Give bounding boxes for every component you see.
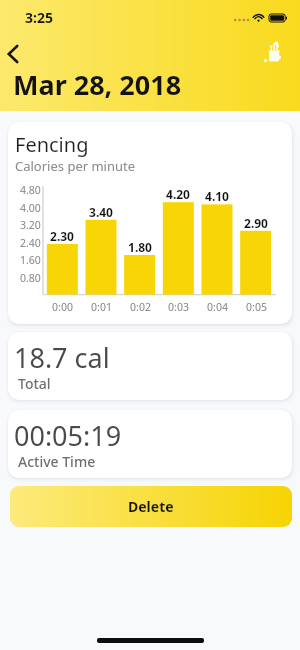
staticText: Delete <box>128 497 174 516</box>
staticText: Mar 28, 2018 <box>13 66 182 103</box>
staticText: 1.60 <box>20 253 41 267</box>
staticText: 1.80 <box>128 239 152 255</box>
button[interactable]: Workout type <box>262 38 290 72</box>
staticText: 0:04 <box>207 300 228 314</box>
staticText: Total <box>18 374 51 393</box>
staticText: 3:25 <box>25 8 53 27</box>
staticText: 2.40 <box>20 236 41 250</box>
staticText: Fencing <box>15 131 89 158</box>
staticText: Active Time <box>18 452 96 471</box>
staticText: 0:03 <box>168 300 189 314</box>
staticText: 2.90 <box>244 215 268 231</box>
button[interactable]: 00:05:19 <box>8 410 292 478</box>
button[interactable]: Back <box>0 37 25 71</box>
staticText: 4.80 <box>20 183 41 197</box>
staticText: 2.30 <box>50 228 74 244</box>
staticText: 18.7 cal <box>14 339 110 376</box>
staticText: 0:00 <box>52 300 73 314</box>
staticText: Calories per minute <box>15 157 136 175</box>
staticText: 3.40 <box>89 204 113 220</box>
button[interactable]: Delete <box>10 486 292 527</box>
button[interactable]: 18.7 cal <box>8 332 292 400</box>
staticText: 4.10 <box>205 188 229 204</box>
staticText: 4.20 <box>166 186 190 202</box>
staticText: 00:05:19 <box>14 417 122 454</box>
staticText: 0.80 <box>20 271 41 285</box>
staticText: 0:02 <box>130 300 151 314</box>
staticText: 3.20 <box>20 218 41 232</box>
staticText: 4.00 <box>20 201 41 215</box>
staticText: 0:01 <box>91 300 112 314</box>
staticText: 0:05 <box>246 300 267 314</box>
